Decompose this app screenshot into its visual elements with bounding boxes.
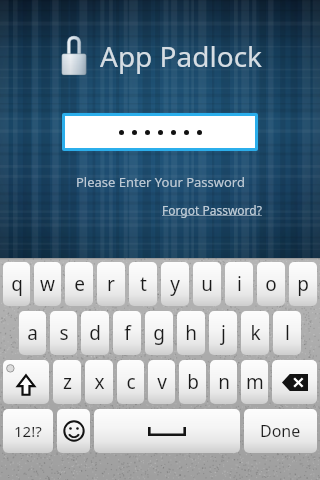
button[interactable]: m (241, 360, 268, 404)
staticText: k (250, 320, 261, 346)
button[interactable]: e (65, 262, 93, 306)
button[interactable]: Emoji (57, 409, 90, 453)
staticText: j (221, 320, 226, 346)
button[interactable]: y (161, 262, 189, 306)
staticText: u (201, 271, 213, 297)
staticText: t (140, 271, 147, 297)
button[interactable]: Done (244, 409, 317, 453)
staticText: q (11, 271, 23, 297)
button[interactable]: c (117, 360, 144, 404)
staticText: i (237, 271, 242, 297)
staticText: h (185, 320, 197, 346)
staticText: Done (260, 420, 301, 442)
button[interactable]: x (85, 360, 113, 404)
button[interactable]: 12!? (3, 409, 53, 453)
button[interactable]: u (193, 262, 221, 306)
button[interactable]: p (289, 262, 317, 306)
staticText: 12!? (14, 421, 42, 441)
button[interactable]: v (148, 360, 175, 404)
button[interactable]: j (209, 311, 237, 355)
staticText: c (126, 369, 136, 395)
staticText: r (107, 271, 115, 297)
button[interactable]: o (257, 262, 285, 306)
button[interactable]: z (53, 360, 81, 404)
staticText: s (59, 320, 69, 346)
button[interactable]: q (3, 262, 30, 306)
staticText: n (218, 369, 230, 395)
staticText: a (27, 320, 38, 346)
button[interactable]: s (50, 311, 77, 355)
button[interactable]: g (145, 311, 173, 355)
staticText: f (124, 320, 131, 346)
staticText: d (89, 320, 101, 346)
button[interactable]: l (273, 311, 301, 355)
button[interactable]: k (241, 311, 269, 355)
staticText: y (170, 271, 180, 297)
staticText: Forgot Password? (162, 202, 262, 218)
button[interactable]: Forgot Password? (162, 202, 262, 218)
button[interactable]: Password field (65, 116, 255, 148)
button[interactable]: d (81, 311, 109, 355)
staticText: g (153, 320, 165, 346)
staticText: o (265, 271, 277, 297)
staticText: l (285, 320, 290, 346)
button[interactable]: b (179, 360, 206, 404)
staticText: v (157, 369, 167, 395)
staticText: x (94, 369, 105, 395)
button[interactable]: n (210, 360, 237, 404)
staticText: e (74, 271, 85, 297)
button[interactable]: Shift (3, 360, 49, 404)
button[interactable]: w (34, 262, 61, 306)
staticText: z (63, 369, 72, 395)
staticText: p (297, 271, 309, 297)
staticText: w (40, 271, 55, 297)
button[interactable]: a (19, 311, 46, 355)
button[interactable]: h (177, 311, 205, 355)
button[interactable]: i (225, 262, 253, 306)
button[interactable]: f (113, 311, 141, 355)
button[interactable]: Backspace (272, 360, 317, 404)
button[interactable]: r (97, 262, 125, 306)
staticText: App Padlock (100, 37, 263, 75)
button[interactable]: t (129, 262, 157, 306)
button[interactable]: Space (94, 409, 240, 453)
staticText: b (187, 369, 199, 395)
staticText: Please Enter Your Password (76, 173, 245, 191)
staticText: m (246, 369, 264, 395)
